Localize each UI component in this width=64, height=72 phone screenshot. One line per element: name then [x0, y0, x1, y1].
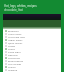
- button[interactable]: Snacks: [3, 65, 61, 68]
- button[interactable]: Smoothies: [3, 56, 61, 59]
- staticText: Seafood: [8, 68, 18, 71]
- staticText: Lunch ideas: [8, 32, 22, 35]
- staticText: Grill recipes: [8, 62, 22, 65]
- button[interactable]: Desserts: [3, 53, 61, 56]
- staticText: Salads: [8, 44, 16, 47]
- staticText: Pasta night: [8, 50, 21, 53]
- button[interactable]: Bread baking: [3, 59, 61, 62]
- button[interactable]: Breakfast: [3, 29, 61, 32]
- staticText: Bread baking: [8, 59, 23, 62]
- staticText: Desserts: [8, 53, 18, 56]
- button[interactable]: Vegan meals: [3, 38, 61, 41]
- staticText: Quick dinner: [8, 41, 23, 44]
- button[interactable]: Pasta night: [3, 50, 61, 53]
- button[interactable]: Soups: [3, 47, 61, 50]
- staticText: chocolate, fast: [4, 8, 24, 12]
- staticText: Hot, legs, whites, recipes: [4, 4, 37, 8]
- staticText: Snacks: [8, 65, 16, 68]
- button[interactable]: Chocolate cake: [3, 35, 61, 38]
- button[interactable]: Quick dinner: [3, 41, 61, 44]
- button[interactable]: Salads: [3, 44, 61, 47]
- staticText: Breakfast: [8, 29, 19, 32]
- button[interactable]: Seafood: [3, 68, 61, 71]
- staticText: Soups: [8, 47, 15, 50]
- button[interactable]: Lunch ideas: [3, 32, 61, 35]
- button[interactable]: Grill recipes: [3, 62, 61, 65]
- staticText: Vegan meals: [8, 38, 23, 41]
- staticText: Chocolate cake: [8, 35, 25, 38]
- staticText: Smoothies: [8, 56, 20, 59]
